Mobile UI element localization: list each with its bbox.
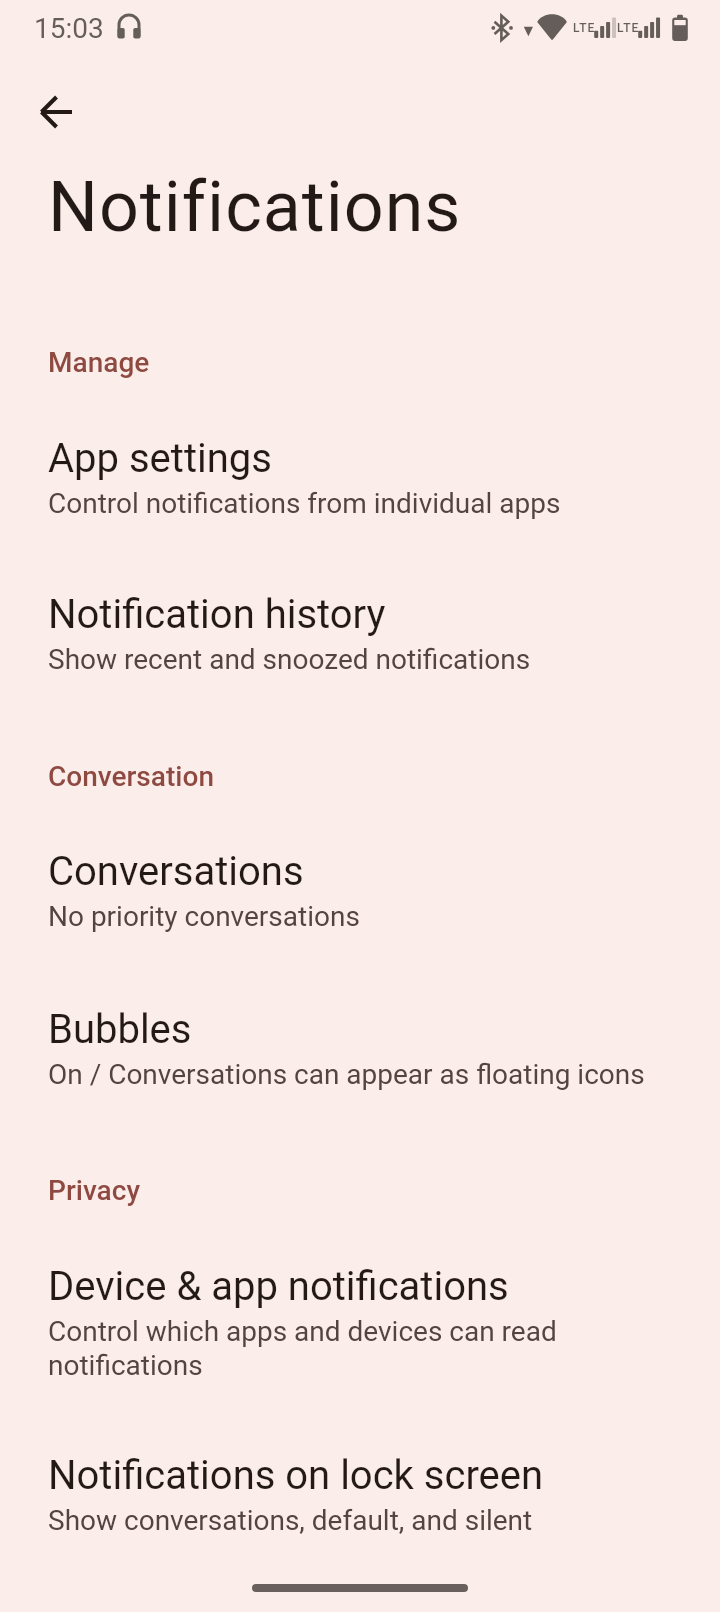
- staticText: Control which apps and devices can read …: [48, 1315, 557, 1382]
- staticText: Show conversations, default, and silent: [48, 1504, 533, 1537]
- staticText: LTE: [573, 21, 596, 35]
- button[interactable]: Notification history: [0, 565, 720, 677]
- staticText: LTE: [617, 21, 640, 35]
- staticText: Notifications: [48, 166, 462, 248]
- staticText: Control notifications from individual ap…: [48, 487, 561, 520]
- staticText: 15:03: [34, 12, 104, 45]
- staticText: Bubbles: [48, 1006, 192, 1053]
- staticText: Privacy: [48, 1174, 141, 1207]
- staticText: Conversations: [48, 848, 304, 895]
- staticText: Notification history: [48, 591, 386, 638]
- button[interactable]: App settings: [0, 409, 720, 521]
- staticText: Show recent and snoozed notifications: [48, 643, 531, 676]
- button[interactable]: Conversations: [0, 822, 720, 934]
- staticText: Notifications on lock screen: [48, 1452, 544, 1499]
- button[interactable]: Notifications on lock screen: [0, 1426, 720, 1538]
- staticText: Manage: [48, 346, 150, 379]
- button[interactable]: Device & app notifications: [0, 1237, 720, 1383]
- staticText: Device & app notifications: [48, 1263, 509, 1310]
- button[interactable]: Back: [28, 84, 84, 140]
- staticText: Conversation: [48, 760, 214, 793]
- staticText: App settings: [48, 435, 272, 482]
- staticText: No priority conversations: [48, 900, 360, 933]
- button[interactable]: Bubbles: [0, 980, 720, 1092]
- staticText: On / Conversations can appear as floatin…: [48, 1058, 645, 1091]
